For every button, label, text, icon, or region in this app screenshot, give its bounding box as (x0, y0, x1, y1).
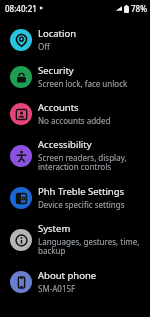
button[interactable]: Phh Treble Settings (0, 179, 150, 216)
button[interactable]: About phone (0, 263, 150, 300)
staticText: Off (38, 41, 50, 52)
staticText: Security (38, 64, 74, 77)
button[interactable]: System (0, 216, 150, 263)
staticText: 78% (131, 3, 147, 14)
button[interactable]: Accessibility (0, 132, 150, 179)
staticText: Screen readers, display, interaction con… (38, 152, 144, 173)
staticText: No accounts added (38, 115, 111, 126)
staticText: Languages, gestures, time, backup (38, 236, 144, 257)
staticText: Screen lock, face unlock (38, 78, 128, 89)
staticText: About phone (38, 269, 97, 282)
button[interactable]: Accounts (0, 95, 150, 132)
staticText: Device specific settings (38, 199, 125, 210)
button[interactable]: Security (0, 58, 150, 95)
staticText: SM-A015F (38, 283, 76, 294)
staticText: Accounts (38, 101, 79, 114)
staticText: Location (38, 27, 77, 40)
staticText: Phh Treble Settings (38, 185, 125, 198)
button[interactable]: Location (0, 21, 150, 58)
staticText: Accessibility (38, 138, 92, 151)
staticText: 08:40:21 (5, 3, 37, 14)
staticText: System (38, 222, 71, 235)
